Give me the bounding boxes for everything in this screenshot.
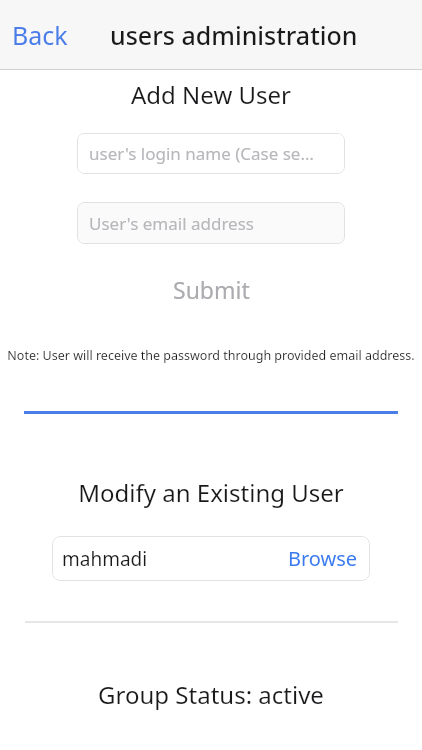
staticText: Browse [288,545,358,572]
button[interactable]: Submit [155,270,268,309]
staticText: users administration [110,18,358,52]
button[interactable]: Browse [286,542,360,575]
staticText: Submit [173,274,250,305]
staticText: Add New User [0,78,422,111]
staticText: mahmadi [62,546,148,572]
staticText: Group Status: active [0,678,422,711]
staticText: Back [12,18,68,52]
staticText: User's email address [89,212,254,235]
button[interactable]: User's email address [77,202,345,244]
staticText: user's login name (Case se… [89,142,314,165]
staticText: Note: User will receive the password thr… [0,347,422,364]
button[interactable]: user's login name (Case se… [77,133,345,174]
button[interactable]: Back [10,14,70,56]
staticText: Modify an Existing User [0,476,422,509]
